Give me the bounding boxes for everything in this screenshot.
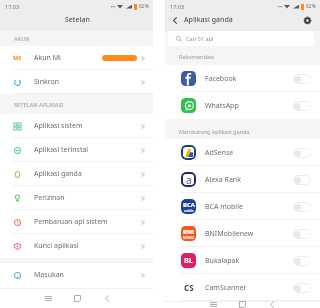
staticText: Masukan [34,270,64,280]
button[interactable]: Cari 51 apl [168,31,314,46]
button[interactable]: Back [168,13,182,27]
staticText: Perizinan [34,193,65,203]
staticText: MI [13,54,21,62]
staticText: 82% [139,3,149,10]
button[interactable]: Perizinan [0,186,153,210]
button[interactable]: CS [165,274,320,301]
staticText: 82% [306,3,316,10]
staticText: Setelan [65,15,90,25]
staticText: a [186,173,192,187]
button[interactable]: Toggle [293,256,311,266]
staticText: Aplikasi ganda [34,169,82,179]
button[interactable]: Home [70,291,85,306]
staticText: Kunci aplikasi [34,241,79,251]
button[interactable]: Toggle [293,148,311,158]
staticText: 17:03 [170,3,185,10]
button[interactable]: BNI [165,220,320,247]
staticText: mobile [184,209,194,213]
staticText: Rekomendasi [179,53,214,60]
button[interactable]: Home [235,301,250,308]
button[interactable]: Toggle [293,175,311,185]
button[interactable]: Sinkron [0,70,153,94]
button[interactable]: Toggle [293,101,311,111]
button[interactable]: MI [0,46,153,70]
button[interactable]: Facebook [165,65,320,92]
staticText: BNIMobilenew [205,229,254,239]
staticText: Cari 51 apl [186,35,214,42]
button[interactable]: Toggle [293,283,311,293]
staticText: Sinkron [34,77,60,87]
button[interactable]: Toggle [293,74,311,84]
button[interactable]: Masukan [0,263,153,287]
staticText: Alexa Rank [205,175,241,185]
staticText: BL [184,256,193,266]
staticText: Aplikasi terinstal [34,145,89,155]
button[interactable]: BCA [165,193,320,220]
button[interactable]: Toggle [293,229,311,239]
staticText: CamScanner [205,283,247,293]
button[interactable]: Back [99,291,114,306]
button[interactable]: BL [165,247,320,274]
staticText: Aplikasi ganda [184,15,233,25]
button[interactable]: AdSense [165,139,320,166]
button[interactable]: a [165,166,320,193]
button[interactable]: Recents [41,291,56,306]
button[interactable]: Settings [300,13,314,27]
staticText: BNI [183,228,195,236]
staticText: CS [184,282,194,293]
button[interactable]: WhatsApp [165,92,320,119]
staticText: AKUN [14,35,30,43]
button[interactable]: Pembaruan apl sistem [0,210,153,234]
staticText: Akun Mi [34,53,61,63]
staticText: Aplikasi sistem [34,121,83,131]
staticText: 17:03 [5,3,20,10]
staticText: BCA mobile [205,202,243,212]
staticText: AdSense [205,148,234,158]
staticText: WhatsApp [205,101,239,111]
button[interactable]: Aplikasi ganda [0,162,153,186]
staticText: MOBILE [183,236,195,240]
button[interactable]: Kunci aplikasi [0,234,153,258]
staticText: Mendukung Aplikasi ganda [179,128,250,135]
staticText: SETELAN APLIKASI [14,101,64,109]
button[interactable]: Toggle [293,202,311,212]
button[interactable]: Back [264,301,279,308]
staticText: Facebook [205,74,237,84]
staticText: Bukalapak [205,256,240,266]
staticText: BCA [183,201,195,209]
button[interactable]: Recents [206,301,221,308]
staticText: Pembaruan apl sistem [34,217,108,227]
button[interactable]: Aplikasi terinstal [0,138,153,162]
button[interactable]: Aplikasi sistem [0,114,153,138]
